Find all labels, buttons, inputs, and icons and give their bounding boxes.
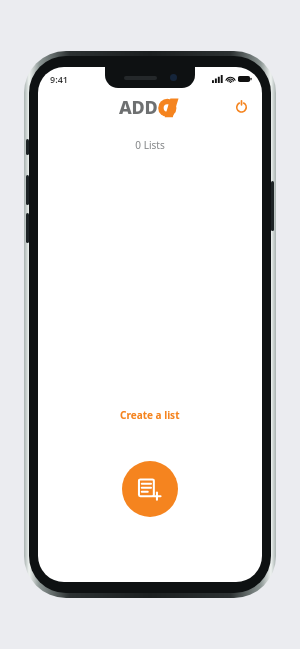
staticText: 0 Lists (38, 138, 262, 152)
staticText: 9:41 (50, 73, 68, 85)
button[interactable]: Create a list (105, 400, 195, 430)
button[interactable]: Power (226, 91, 256, 121)
staticText: ADD (119, 95, 158, 120)
button[interactable]: Create a list (122, 461, 178, 517)
staticText: Create a list (120, 408, 180, 422)
